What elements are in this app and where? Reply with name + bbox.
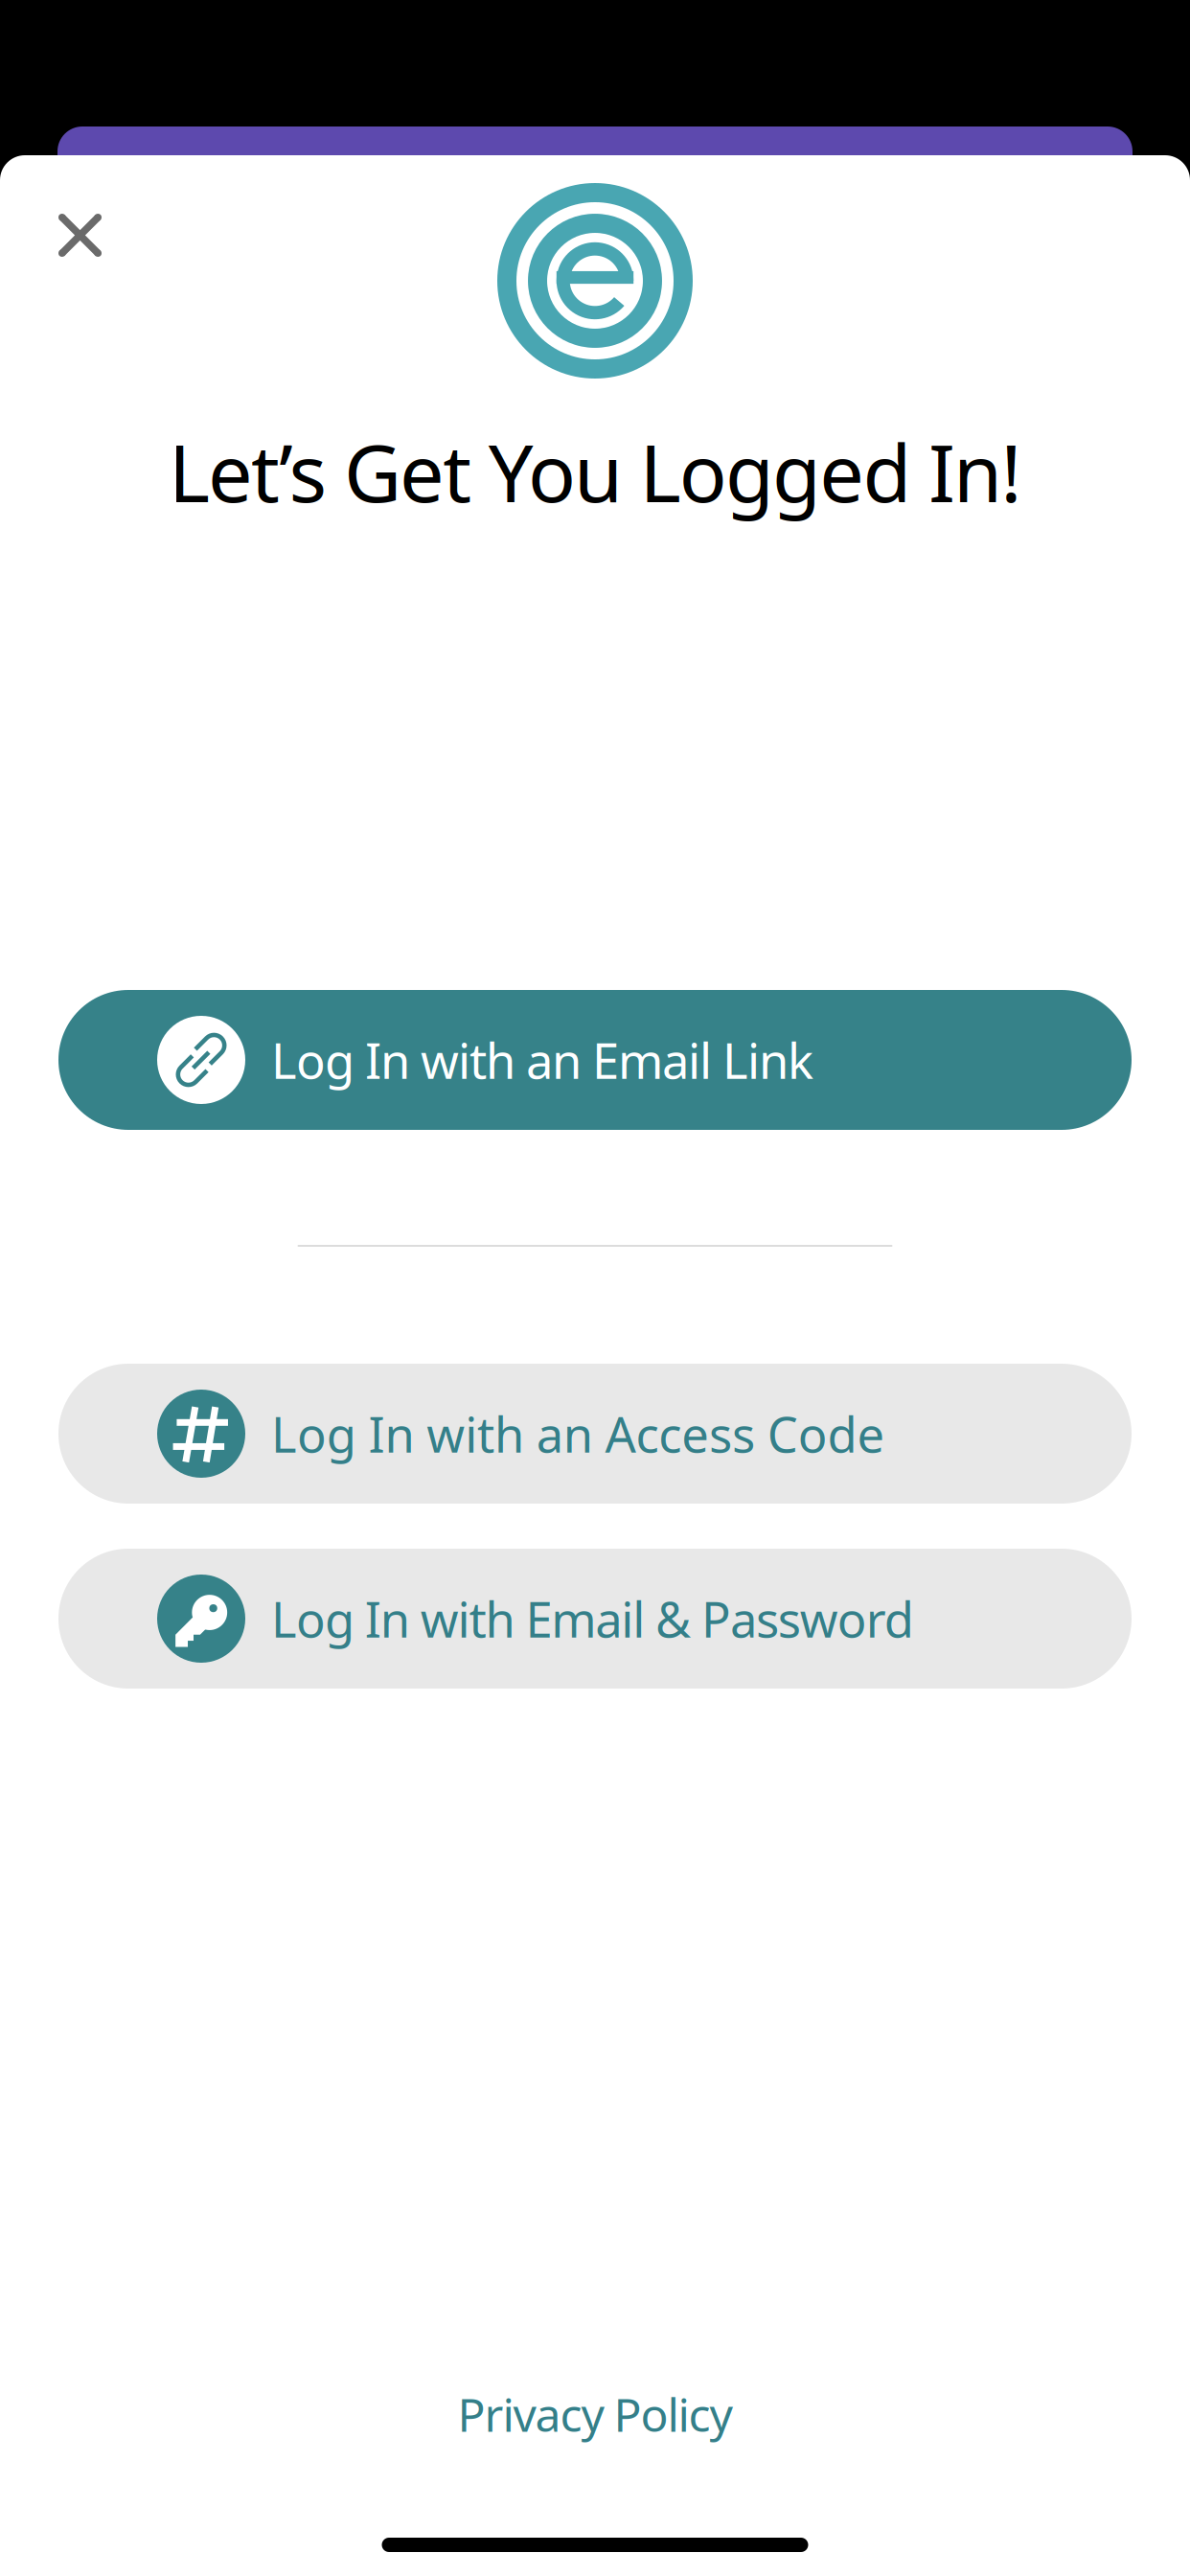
staticText: Log In with Email & Password [271,1586,914,1651]
button[interactable]: Log In with Email & Password [58,1549,1132,1689]
button[interactable]: Privacy Policy [435,2376,755,2452]
staticText: Log In with an Access Code [271,1401,885,1466]
staticText: Log In with an Email Link [271,1028,813,1092]
button[interactable]: Log In with an Email Link [58,990,1132,1130]
staticText: Let’s Get You Logged In! [168,419,1022,524]
button[interactable]: Log In with an Access Code [58,1364,1132,1504]
button[interactable]: Close [0,171,145,300]
staticText: Privacy Policy [458,2383,732,2444]
